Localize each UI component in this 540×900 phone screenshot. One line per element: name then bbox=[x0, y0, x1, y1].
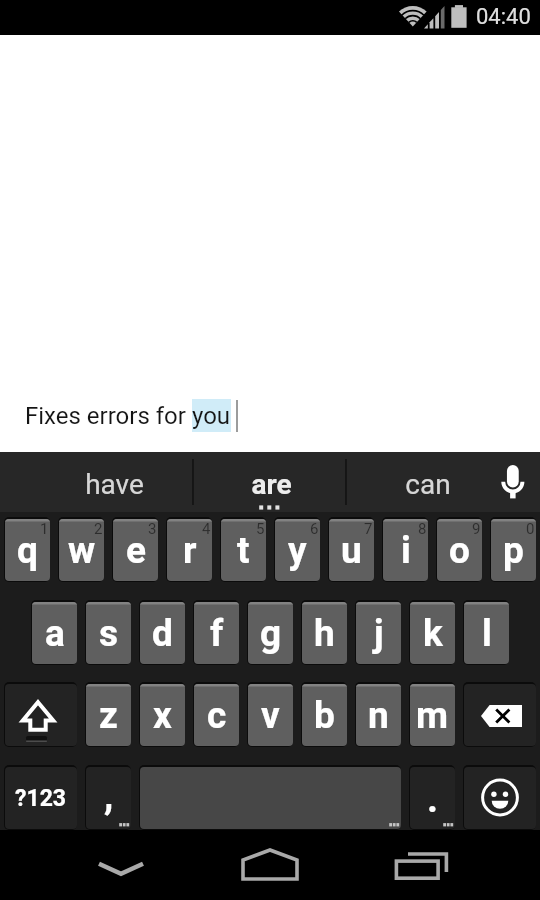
button[interactable]: d bbox=[140, 602, 185, 664]
button[interactable]: h bbox=[302, 602, 347, 664]
staticText: you bbox=[192, 402, 231, 430]
button[interactable]: o bbox=[437, 519, 482, 581]
button[interactable]: r bbox=[167, 519, 212, 581]
button[interactable]: u bbox=[329, 519, 374, 581]
button[interactable]: Hide keyboard bbox=[75, 830, 167, 900]
button[interactable]: g bbox=[248, 602, 293, 664]
button[interactable]: e bbox=[113, 519, 158, 581]
staticText: 04:40 bbox=[476, 4, 531, 30]
button[interactable]: ?123 bbox=[5, 767, 77, 829]
staticText: d bbox=[152, 612, 173, 655]
button[interactable]: , bbox=[86, 767, 131, 829]
staticText: t bbox=[237, 529, 250, 572]
button[interactable]: . bbox=[410, 767, 455, 829]
staticText: j bbox=[374, 612, 384, 655]
staticText: h bbox=[314, 612, 335, 655]
staticText: u bbox=[341, 529, 362, 572]
staticText: w bbox=[68, 529, 96, 572]
staticText: k bbox=[423, 612, 443, 655]
button[interactable]: Backspace bbox=[464, 684, 536, 746]
staticText: . bbox=[427, 777, 439, 822]
staticText: Fixes errors for bbox=[25, 402, 192, 430]
staticText: 7 bbox=[364, 520, 373, 538]
staticText: 0 bbox=[526, 520, 535, 538]
button[interactable]: q bbox=[5, 519, 50, 581]
button[interactable]: v bbox=[248, 684, 293, 746]
staticText: n bbox=[368, 694, 389, 737]
button[interactable]: n bbox=[356, 684, 401, 746]
staticText: i bbox=[401, 529, 411, 572]
button[interactable]: x bbox=[140, 684, 185, 746]
staticText: r bbox=[183, 529, 197, 572]
staticText: c bbox=[207, 694, 227, 737]
staticText: f bbox=[210, 612, 224, 655]
staticText: can bbox=[405, 468, 451, 501]
staticText: ?123 bbox=[15, 785, 67, 812]
staticText: 2 bbox=[94, 520, 103, 538]
button[interactable]: c bbox=[194, 684, 239, 746]
button[interactable]: can bbox=[351, 452, 505, 512]
button[interactable]: p bbox=[491, 519, 536, 581]
button[interactable]: k bbox=[410, 602, 455, 664]
staticText: p bbox=[503, 529, 524, 572]
staticText: g bbox=[260, 612, 282, 655]
button[interactable]: f bbox=[194, 602, 239, 664]
staticText: o bbox=[449, 529, 470, 572]
staticText: , bbox=[104, 774, 114, 819]
button[interactable]: Shift bbox=[5, 684, 77, 746]
staticText: have bbox=[85, 468, 144, 501]
staticText: e bbox=[126, 529, 146, 572]
staticText: are bbox=[251, 468, 292, 501]
staticText: z bbox=[99, 694, 118, 737]
button[interactable]: w bbox=[59, 519, 104, 581]
staticText: b bbox=[314, 694, 335, 737]
button[interactable]: z bbox=[86, 684, 131, 746]
button[interactable]: j bbox=[356, 602, 401, 664]
staticText: v bbox=[261, 694, 280, 737]
staticText: 9 bbox=[472, 520, 481, 538]
button[interactable]: l bbox=[464, 602, 509, 664]
button[interactable]: t bbox=[221, 519, 266, 581]
button[interactable]: b bbox=[302, 684, 347, 746]
button[interactable]: Recent apps bbox=[374, 830, 466, 900]
button[interactable]: a bbox=[32, 602, 77, 664]
button[interactable]: Emoji bbox=[464, 767, 536, 829]
staticText: q bbox=[17, 529, 38, 572]
staticText: 5 bbox=[256, 520, 265, 538]
button[interactable]: Voice input bbox=[480, 452, 540, 512]
staticText: 4 bbox=[202, 520, 211, 538]
button[interactable]: i bbox=[383, 519, 428, 581]
staticText: l bbox=[482, 612, 492, 655]
button[interactable]: are bbox=[195, 452, 348, 512]
staticText: m bbox=[416, 694, 449, 737]
staticText: y bbox=[288, 529, 307, 572]
staticText: s bbox=[99, 612, 119, 655]
button[interactable]: have bbox=[38, 452, 191, 512]
staticText: a bbox=[45, 612, 65, 655]
button[interactable]: s bbox=[86, 602, 131, 664]
staticText: 6 bbox=[310, 520, 319, 538]
staticText: 8 bbox=[418, 520, 427, 538]
staticText: x bbox=[153, 694, 172, 737]
button[interactable]: m bbox=[410, 684, 455, 746]
button[interactable]: Home bbox=[224, 830, 316, 900]
button[interactable] bbox=[140, 767, 401, 829]
staticText: 3 bbox=[148, 520, 157, 538]
staticText: 1 bbox=[40, 520, 49, 538]
button[interactable]: y bbox=[275, 519, 320, 581]
